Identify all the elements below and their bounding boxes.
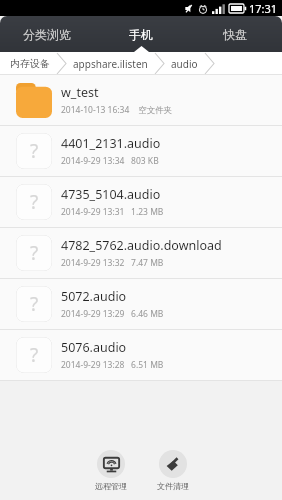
button[interactable]: audio xyxy=(171,52,198,75)
button[interactable]: 手机 xyxy=(94,16,188,52)
staticText: 文件清理 xyxy=(157,481,189,491)
staticText: 4782_5762.audio.download xyxy=(61,237,222,254)
button[interactable]: 快盘 xyxy=(188,16,282,52)
staticText: w_test xyxy=(61,84,99,101)
staticText: 2014-9-29 13:29 6.46 MB xyxy=(61,308,164,320)
button[interactable]: ? xyxy=(0,279,282,330)
button[interactable]: ? xyxy=(0,228,282,279)
staticText: 快盘 xyxy=(223,27,247,42)
staticText: 手机 xyxy=(129,27,153,42)
button[interactable]: 内存设备 xyxy=(10,52,50,75)
staticText: 5072.audio xyxy=(61,288,127,305)
staticText: ? xyxy=(30,138,39,164)
staticText: ? xyxy=(30,291,39,317)
staticText: 远程管理 xyxy=(95,481,127,491)
button[interactable]: ? xyxy=(0,126,282,177)
staticText: 4735_5104.audio xyxy=(61,186,161,203)
button[interactable]: 分类浏览 xyxy=(0,16,94,52)
staticText: appshare.ilisten xyxy=(73,57,148,71)
button[interactable]: 远程管理 xyxy=(83,450,138,491)
button[interactable]: w_test xyxy=(0,75,282,126)
button[interactable]: 文件清理 xyxy=(145,450,200,491)
staticText: 2014-10-13 16:34 空文件夹 xyxy=(61,104,173,116)
staticText: 2014-9-29 13:28 6.51 MB xyxy=(61,359,164,371)
staticText: audio xyxy=(171,57,198,71)
staticText: 内存设备 xyxy=(10,57,50,70)
button[interactable]: ? xyxy=(0,330,282,381)
staticText: ? xyxy=(30,240,39,266)
staticText: 2014-9-29 13:32 7.47 MB xyxy=(61,257,164,269)
button[interactable]: ? xyxy=(0,177,282,228)
staticText: 2014-9-29 13:31 1.23 MB xyxy=(61,206,164,218)
staticText: 17:31 xyxy=(249,1,278,16)
button[interactable]: appshare.ilisten xyxy=(73,52,148,75)
staticText: 2014-9-29 13:34 803 KB xyxy=(61,155,159,167)
staticText: ? xyxy=(30,342,39,368)
staticText: 4401_2131.audio xyxy=(61,135,161,152)
staticText: 分类浏览 xyxy=(23,27,71,42)
staticText: 5076.audio xyxy=(61,339,127,356)
staticText: ? xyxy=(30,189,39,215)
